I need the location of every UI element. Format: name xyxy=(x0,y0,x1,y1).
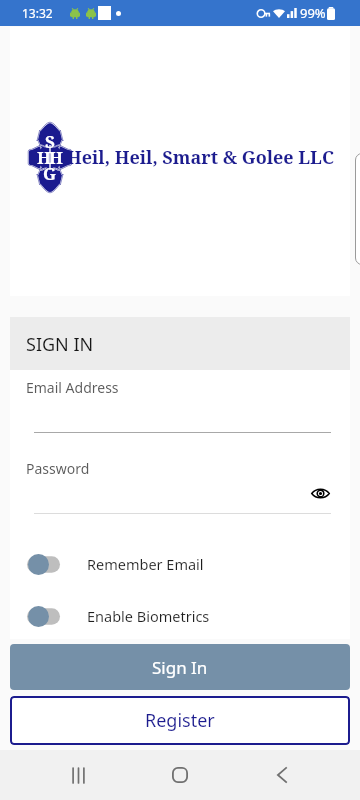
staticText: Remember Email xyxy=(87,554,204,574)
staticText: Heil, Heil, Smart & Golee LLC xyxy=(67,145,334,170)
staticText: Password xyxy=(26,459,90,478)
staticText: Register xyxy=(145,708,215,733)
staticText: G xyxy=(43,162,57,185)
button[interactable]: Recent apps xyxy=(54,751,102,799)
staticText: S xyxy=(45,130,55,153)
button[interactable]: Enable Biometrics xyxy=(10,601,350,631)
button[interactable]: Register xyxy=(10,696,350,745)
staticText: Sign In xyxy=(152,656,208,679)
button[interactable]: Show password xyxy=(304,477,336,509)
staticText: H xyxy=(37,146,51,169)
button[interactable]: Remember Email xyxy=(10,549,350,579)
button[interactable]: Home xyxy=(156,751,204,799)
staticText: SIGN IN xyxy=(26,332,94,357)
staticText: Enable Biometrics xyxy=(87,606,210,626)
button[interactable]: Back xyxy=(258,751,306,799)
staticText: 99% xyxy=(300,4,326,22)
button[interactable]: Sign In xyxy=(10,644,350,690)
staticText: 13:32 xyxy=(22,5,53,21)
staticText: H xyxy=(49,146,63,169)
staticText: Email Address xyxy=(26,378,119,397)
